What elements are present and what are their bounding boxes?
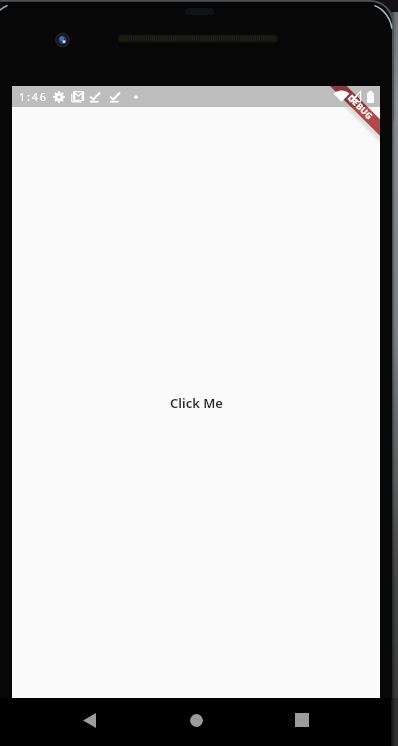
button[interactable]: Click Me <box>160 388 233 418</box>
staticText: DEBUG <box>345 92 376 123</box>
staticText: Click Me <box>170 394 223 412</box>
staticText: 1:46 <box>19 89 48 104</box>
button[interactable]: Back <box>67 698 111 742</box>
button[interactable]: Home <box>174 698 218 742</box>
button[interactable]: Recent apps <box>280 698 324 742</box>
